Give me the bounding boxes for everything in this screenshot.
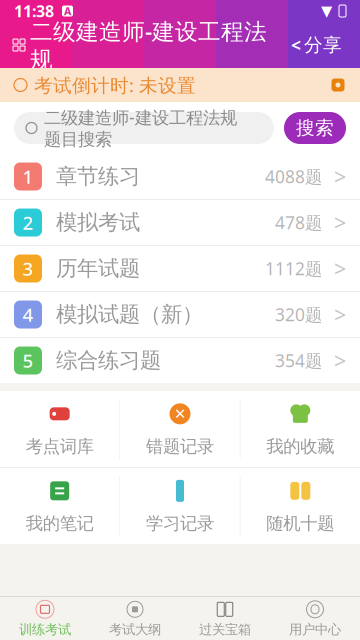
button[interactable]: 4	[0, 292, 360, 337]
button[interactable]: 我的收藏	[241, 391, 360, 467]
button[interactable]: 1	[0, 154, 360, 199]
staticText: 模拟考试	[56, 209, 140, 236]
staticText: >	[334, 300, 346, 329]
staticText: 考试倒计时: 未设置	[34, 73, 196, 97]
staticText: >	[334, 254, 346, 283]
staticText: 模拟试题（新）	[56, 301, 203, 328]
staticText: 1112题	[265, 257, 322, 280]
staticText: 搜索	[296, 116, 334, 139]
staticText: 1	[22, 164, 33, 189]
button[interactable]: 考试大纲	[90, 597, 180, 640]
staticText: <	[291, 33, 301, 56]
staticText: 二级建造师-建设工程法规题目搜索	[44, 106, 237, 150]
staticText: >	[334, 162, 346, 191]
button[interactable]: ✕	[120, 391, 240, 467]
staticText: 4	[22, 302, 33, 327]
staticText: 2	[22, 210, 33, 235]
button[interactable]: 二级建造师-建设工程法规题目搜索	[14, 112, 274, 144]
staticText: 章节练习	[56, 163, 140, 190]
staticText: 历年试题	[56, 255, 140, 282]
button[interactable]: 训练考试	[0, 597, 90, 640]
button[interactable]: 我的笔记	[0, 468, 119, 544]
staticText: 分享	[304, 33, 342, 56]
staticText: >	[334, 346, 346, 375]
staticText: 4088题	[265, 165, 322, 188]
staticText: 考点词库	[26, 436, 94, 457]
staticText: 354题	[275, 349, 322, 372]
staticText: 过关宝箱	[199, 621, 251, 638]
staticText: 随机十题	[266, 513, 334, 534]
staticText: 我的收藏	[266, 436, 334, 457]
button[interactable]: 过关宝箱	[180, 597, 270, 640]
staticText: 错题记录	[146, 436, 214, 457]
staticText: 考试大纲	[109, 621, 161, 638]
button[interactable]: 用户中心	[270, 597, 360, 640]
staticText: ✕	[174, 405, 186, 422]
staticText: 我的笔记	[26, 513, 94, 534]
staticText: 11:38	[14, 0, 54, 22]
button[interactable]: 5	[0, 338, 360, 383]
button[interactable]: 考点词库	[0, 391, 119, 467]
staticText: 320题	[275, 303, 322, 326]
staticText: 学习记录	[146, 513, 214, 534]
staticText: A	[64, 4, 71, 18]
button[interactable]: 3	[0, 246, 360, 291]
staticText: 478题	[275, 211, 322, 234]
staticText: ▼	[321, 3, 332, 19]
button[interactable]: 搜索	[284, 112, 346, 144]
staticText: 3	[22, 256, 33, 281]
button[interactable]: 随机十题	[241, 468, 360, 544]
staticText: >	[334, 208, 346, 237]
staticText: 用户中心	[289, 621, 341, 638]
staticText: 5	[22, 348, 33, 373]
button[interactable]: 学习记录	[120, 468, 240, 544]
staticText: 综合练习题	[56, 347, 161, 374]
button[interactable]: 考试倒计时: 未设置	[0, 68, 360, 102]
staticText: 二级建造师-建设工程法规	[30, 16, 267, 74]
button[interactable]: 2	[0, 200, 360, 245]
staticText: 训练考试	[19, 621, 71, 638]
button[interactable]: <	[285, 27, 348, 62]
